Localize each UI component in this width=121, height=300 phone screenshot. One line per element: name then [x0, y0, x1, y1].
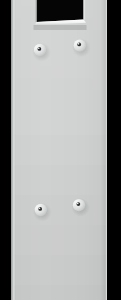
button[interactable]: Metal mounting plate — [0, 0, 121, 300]
